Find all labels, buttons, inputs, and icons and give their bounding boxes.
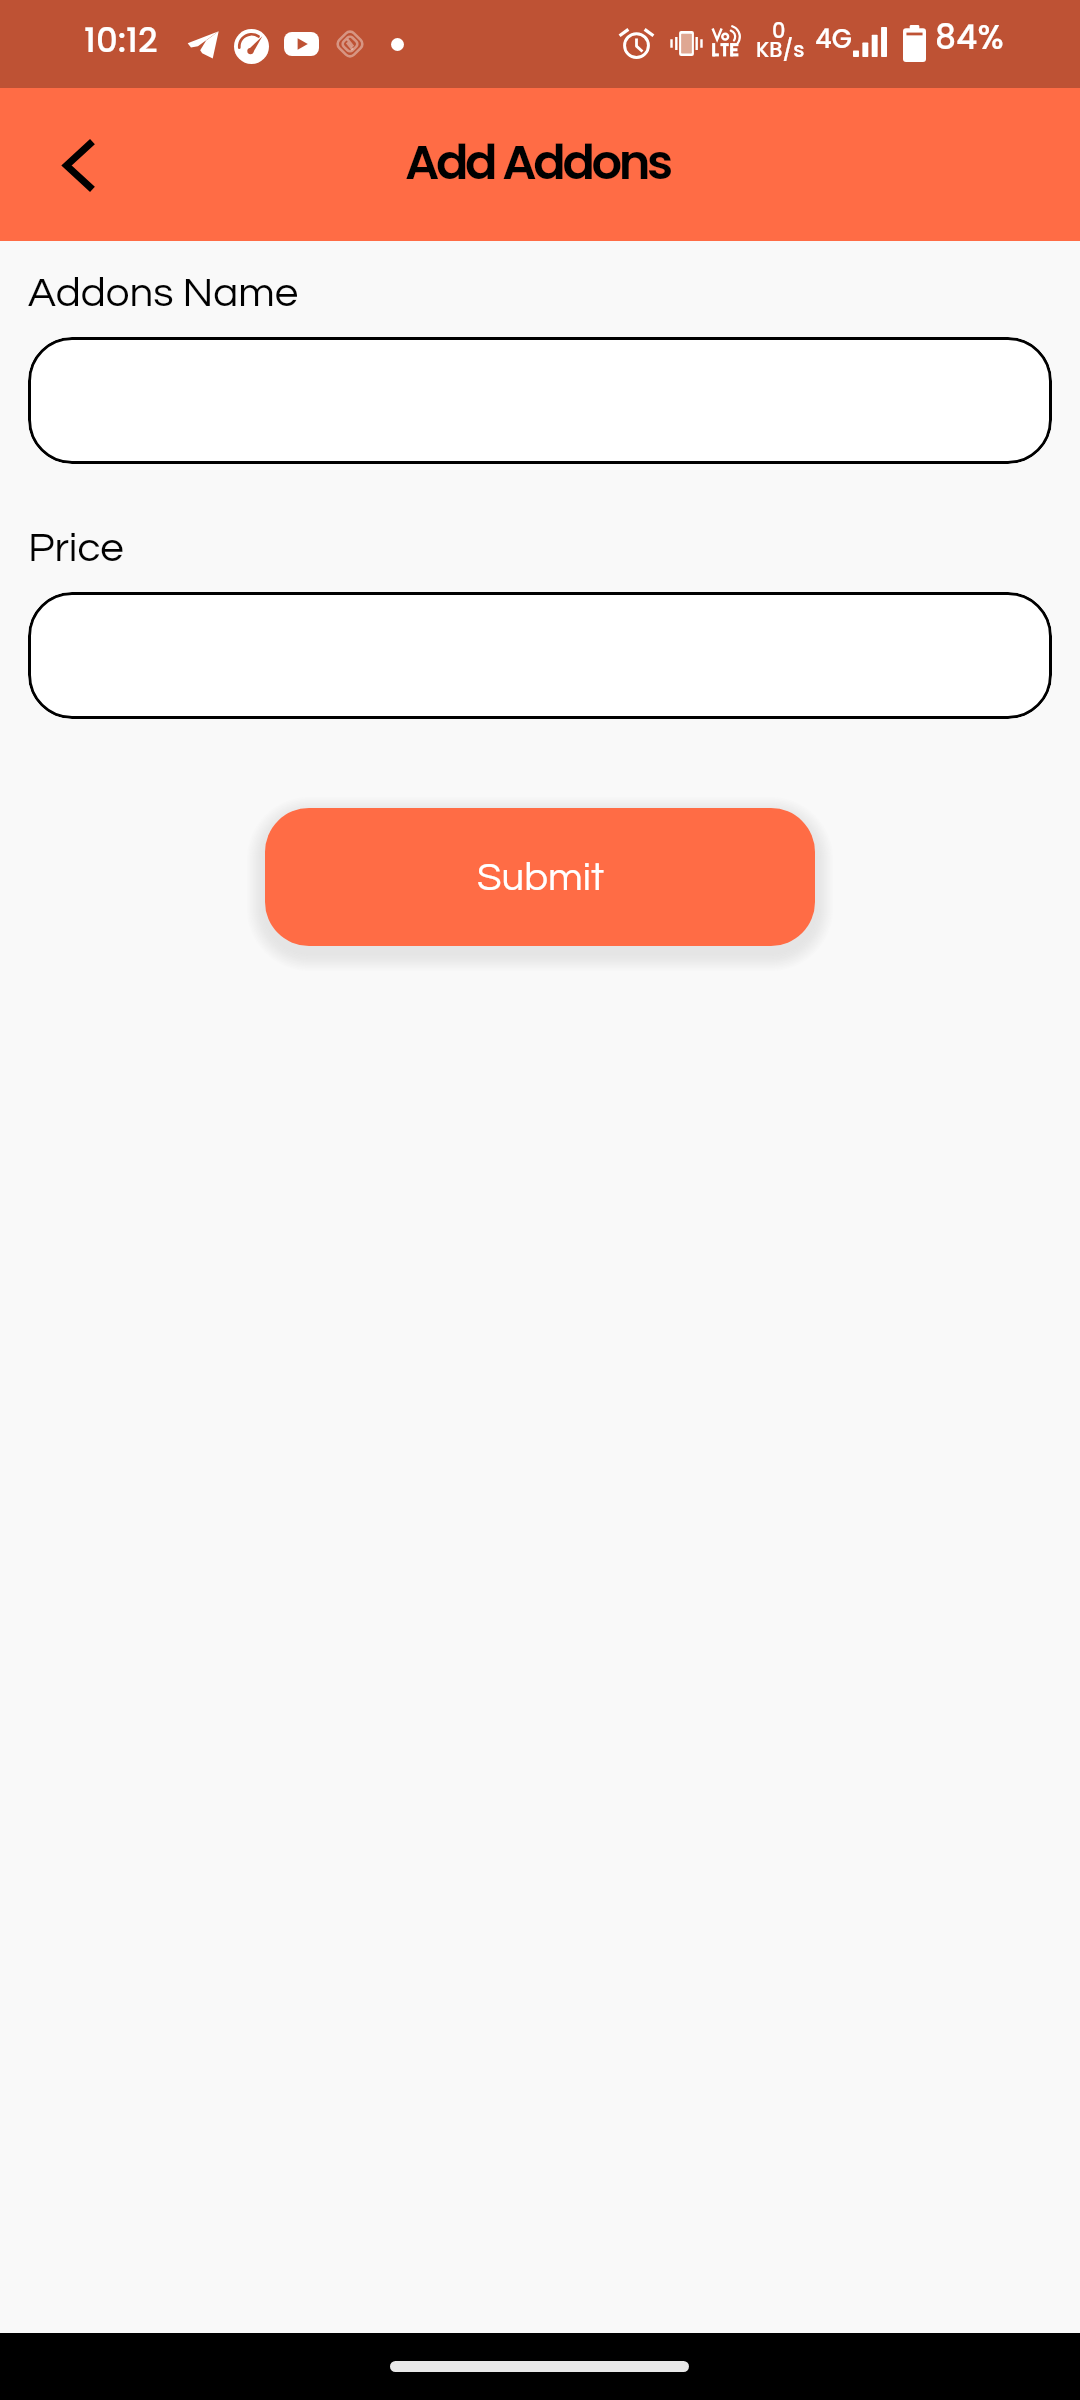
staticText: 0 <box>772 22 786 44</box>
staticText: Addons Name <box>28 263 299 317</box>
button[interactable] <box>28 337 1052 464</box>
staticText: Add Addons <box>405 129 670 196</box>
staticText: 84% <box>935 24 1004 58</box>
staticText: Submit <box>477 857 604 898</box>
button[interactable] <box>28 592 1052 719</box>
button[interactable]: Submit <box>265 808 815 946</box>
button[interactable]: Back <box>30 116 128 214</box>
staticText: Price <box>28 518 124 572</box>
staticText: KB/s <box>756 41 805 63</box>
staticText: 4G <box>815 26 852 56</box>
staticText: 10:12 <box>84 26 158 62</box>
